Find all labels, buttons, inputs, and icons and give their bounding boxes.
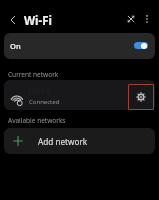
staticText: Available networks [8,116,66,125]
staticText: On [10,41,21,51]
staticText: Connected [29,98,60,106]
staticText: Wi-Fi [24,13,52,29]
staticText: Add network [38,136,88,147]
button[interactable]: On [4,33,155,59]
button[interactable]: Add network [4,128,155,154]
button[interactable]: More options [139,11,155,27]
button[interactable]: Navigate up [5,12,21,28]
button[interactable]: Scan QR code [123,11,139,27]
staticText: Current network [8,70,59,79]
button[interactable]: Network settings [128,84,154,110]
button[interactable]: Home [4,80,155,110]
